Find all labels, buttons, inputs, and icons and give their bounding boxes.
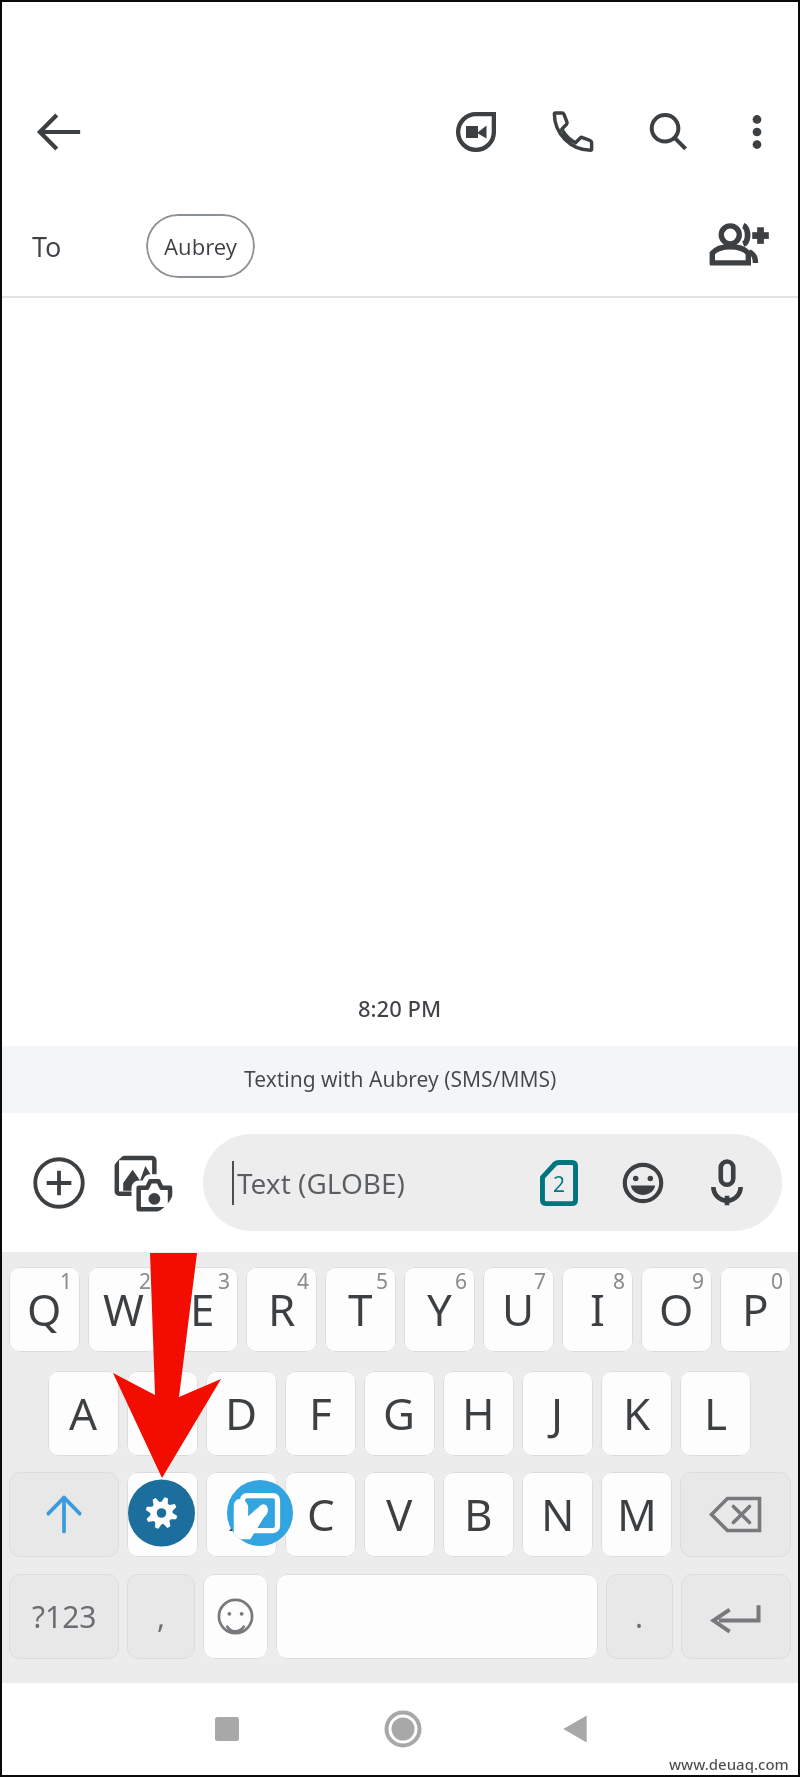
staticText: L [704,1383,728,1443]
staticText: Texting with Aubrey (SMS/MMS) [244,1065,557,1094]
staticText: I [590,1279,605,1339]
staticText: 8 [613,1267,626,1296]
button[interactable]: L [680,1371,751,1456]
staticText: To [32,228,62,265]
button[interactable]: Space [276,1574,598,1659]
button[interactable]: ?123 [9,1574,119,1659]
button[interactable]: C [285,1472,356,1557]
button[interactable]: Aubrey [146,214,255,278]
button[interactable]: Add attachment [26,1150,92,1216]
button[interactable]: Enter [681,1574,791,1659]
button[interactable]: O [641,1267,712,1352]
staticText: 5 [376,1267,389,1296]
button[interactable]: Q [9,1267,80,1352]
button[interactable]: Home [363,1689,443,1769]
staticText: X [229,1484,255,1544]
button[interactable]: S [127,1371,198,1456]
button[interactable]: Call [537,96,609,168]
staticText: E [190,1279,215,1339]
button[interactable]: U [483,1267,554,1352]
staticText: R [268,1279,296,1339]
staticText: 2 [553,1170,566,1199]
staticText: , [157,1596,166,1637]
staticText: 6 [455,1267,468,1296]
button[interactable]: SIM 2 [530,1154,588,1212]
staticText: Text (GLOBE) [237,1164,405,1202]
button[interactable]: Text (GLOBE) [203,1134,782,1231]
button[interactable]: A [48,1371,119,1456]
staticText: Z [150,1484,176,1544]
staticText: V [386,1484,413,1544]
staticText: 9 [692,1267,705,1296]
staticText: Y [427,1279,452,1339]
staticText: D [225,1383,258,1443]
staticText: Aubrey [164,231,238,261]
button[interactable]: Search [633,96,705,168]
button[interactable]: Back [24,96,96,168]
button[interactable]: , [127,1574,195,1659]
staticText: 3 [218,1267,231,1296]
button[interactable]: Z [127,1472,198,1557]
staticText: Q [27,1279,62,1339]
button[interactable]: P [720,1267,791,1352]
button[interactable]: E [167,1267,238,1352]
button[interactable]: F [285,1371,356,1456]
staticText: S [150,1383,175,1443]
staticText: 1 [60,1267,73,1296]
staticText: www.deuaq.com [669,1754,789,1774]
staticText: K [623,1383,651,1443]
button[interactable]: G [364,1371,435,1456]
button[interactable]: K [601,1371,672,1456]
staticText: 8:20 PM [358,993,442,1023]
button[interactable]: N [522,1472,593,1557]
button[interactable]: W [88,1267,159,1352]
button[interactable]: Shift [9,1472,119,1557]
staticText: ?123 [32,1596,97,1637]
staticText: A [69,1383,98,1443]
button[interactable]: Voice input [698,1154,756,1212]
button[interactable]: R [246,1267,317,1352]
staticText: O [659,1279,694,1339]
staticText: U [502,1279,535,1339]
staticText: J [551,1383,564,1443]
button[interactable]: More options [721,96,793,168]
staticText: 7 [534,1267,547,1296]
button[interactable]: Camera and gallery [109,1150,175,1216]
button[interactable]: Y [404,1267,475,1352]
staticText: M [617,1484,657,1544]
button[interactable]: V [364,1472,435,1557]
staticText: H [462,1383,495,1443]
button[interactable]: M [601,1472,672,1557]
button[interactable]: Emoji [614,1154,672,1212]
button[interactable]: D [206,1371,277,1456]
staticText: N [541,1484,575,1544]
staticText: 4 [297,1267,310,1296]
staticText: B [464,1484,493,1544]
button[interactable]: Add people [704,210,776,282]
button[interactable]: Back [535,1689,615,1769]
button[interactable]: B [443,1472,514,1557]
button[interactable]: X [206,1472,277,1557]
staticText: 2 [139,1267,152,1296]
button[interactable]: H [443,1371,514,1456]
staticText: T [348,1279,373,1339]
button[interactable]: I [562,1267,633,1352]
staticText: F [309,1383,332,1443]
staticText: P [742,1279,769,1339]
button[interactable]: Recents [187,1689,267,1769]
button[interactable]: Backspace [680,1472,791,1557]
staticText: W [103,1279,144,1339]
button[interactable]: . [606,1574,673,1659]
staticText: . [635,1596,644,1637]
staticText: C [307,1484,335,1544]
button[interactable]: J [522,1371,593,1456]
button[interactable]: T [325,1267,396,1352]
button[interactable]: Video call [440,96,512,168]
staticText: G [383,1383,416,1443]
button[interactable]: Emoji keyboard [203,1574,268,1659]
staticText: 0 [771,1267,784,1296]
